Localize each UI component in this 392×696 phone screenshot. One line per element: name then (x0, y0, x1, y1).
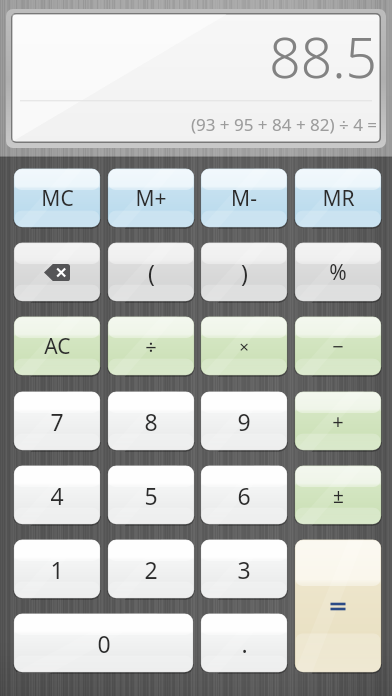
button[interactable]: % (294, 242, 382, 303)
button[interactable]: 1 (13, 539, 101, 600)
staticText: × (239, 335, 249, 358)
staticText: 3 (237, 554, 251, 585)
button[interactable]: MR (294, 168, 382, 229)
button[interactable]: ÷ (107, 316, 195, 377)
staticText: M- (231, 184, 257, 213)
button[interactable]: ( (107, 242, 195, 303)
button[interactable]: + (294, 391, 382, 452)
staticText: ) (241, 257, 248, 288)
staticText: + (332, 408, 344, 435)
button[interactable]: Backspace (13, 242, 101, 303)
button[interactable]: 3 (200, 539, 288, 600)
button[interactable]: − (294, 316, 382, 377)
staticText: 4 (50, 480, 64, 511)
staticText: . (241, 628, 248, 659)
staticText: 8 (144, 406, 158, 437)
staticText: 5 (144, 480, 158, 511)
staticText: (93 + 95 + 84 + 82) ÷ 4 = (190, 113, 377, 136)
button[interactable]: M+ (107, 168, 195, 229)
button[interactable]: 2 (107, 539, 195, 600)
button[interactable]: 0 (13, 613, 194, 674)
staticText: 1 (50, 554, 64, 585)
staticText: − (332, 333, 344, 360)
staticText: MR (322, 184, 355, 213)
button[interactable]: 8 (107, 391, 195, 452)
staticText: ( (148, 257, 155, 288)
button[interactable]: ) (200, 242, 288, 303)
staticText: 88.5 (269, 19, 377, 94)
button[interactable]: 4 (13, 465, 101, 526)
staticText: M+ (135, 184, 167, 213)
staticText: MC (41, 184, 74, 213)
staticText: 7 (50, 406, 64, 437)
staticText: 2 (144, 554, 158, 585)
staticText: ÷ (145, 333, 157, 360)
staticText: % (329, 258, 347, 287)
button[interactable]: 9 (200, 391, 288, 452)
staticText: ± (333, 483, 344, 509)
button[interactable]: 6 (200, 465, 288, 526)
button[interactable]: 7 (13, 391, 101, 452)
staticText: 9 (237, 406, 251, 437)
button[interactable]: AC (13, 316, 101, 377)
staticText: 0 (97, 628, 111, 659)
button[interactable]: Equals (294, 539, 382, 674)
button[interactable]: . (200, 613, 288, 674)
button[interactable]: M- (200, 168, 288, 229)
button[interactable]: MC (13, 168, 101, 229)
staticText: AC (44, 332, 71, 361)
staticText: 6 (237, 480, 251, 511)
button[interactable]: × (200, 316, 288, 377)
button[interactable]: ± (294, 465, 382, 526)
button[interactable]: 5 (107, 465, 195, 526)
